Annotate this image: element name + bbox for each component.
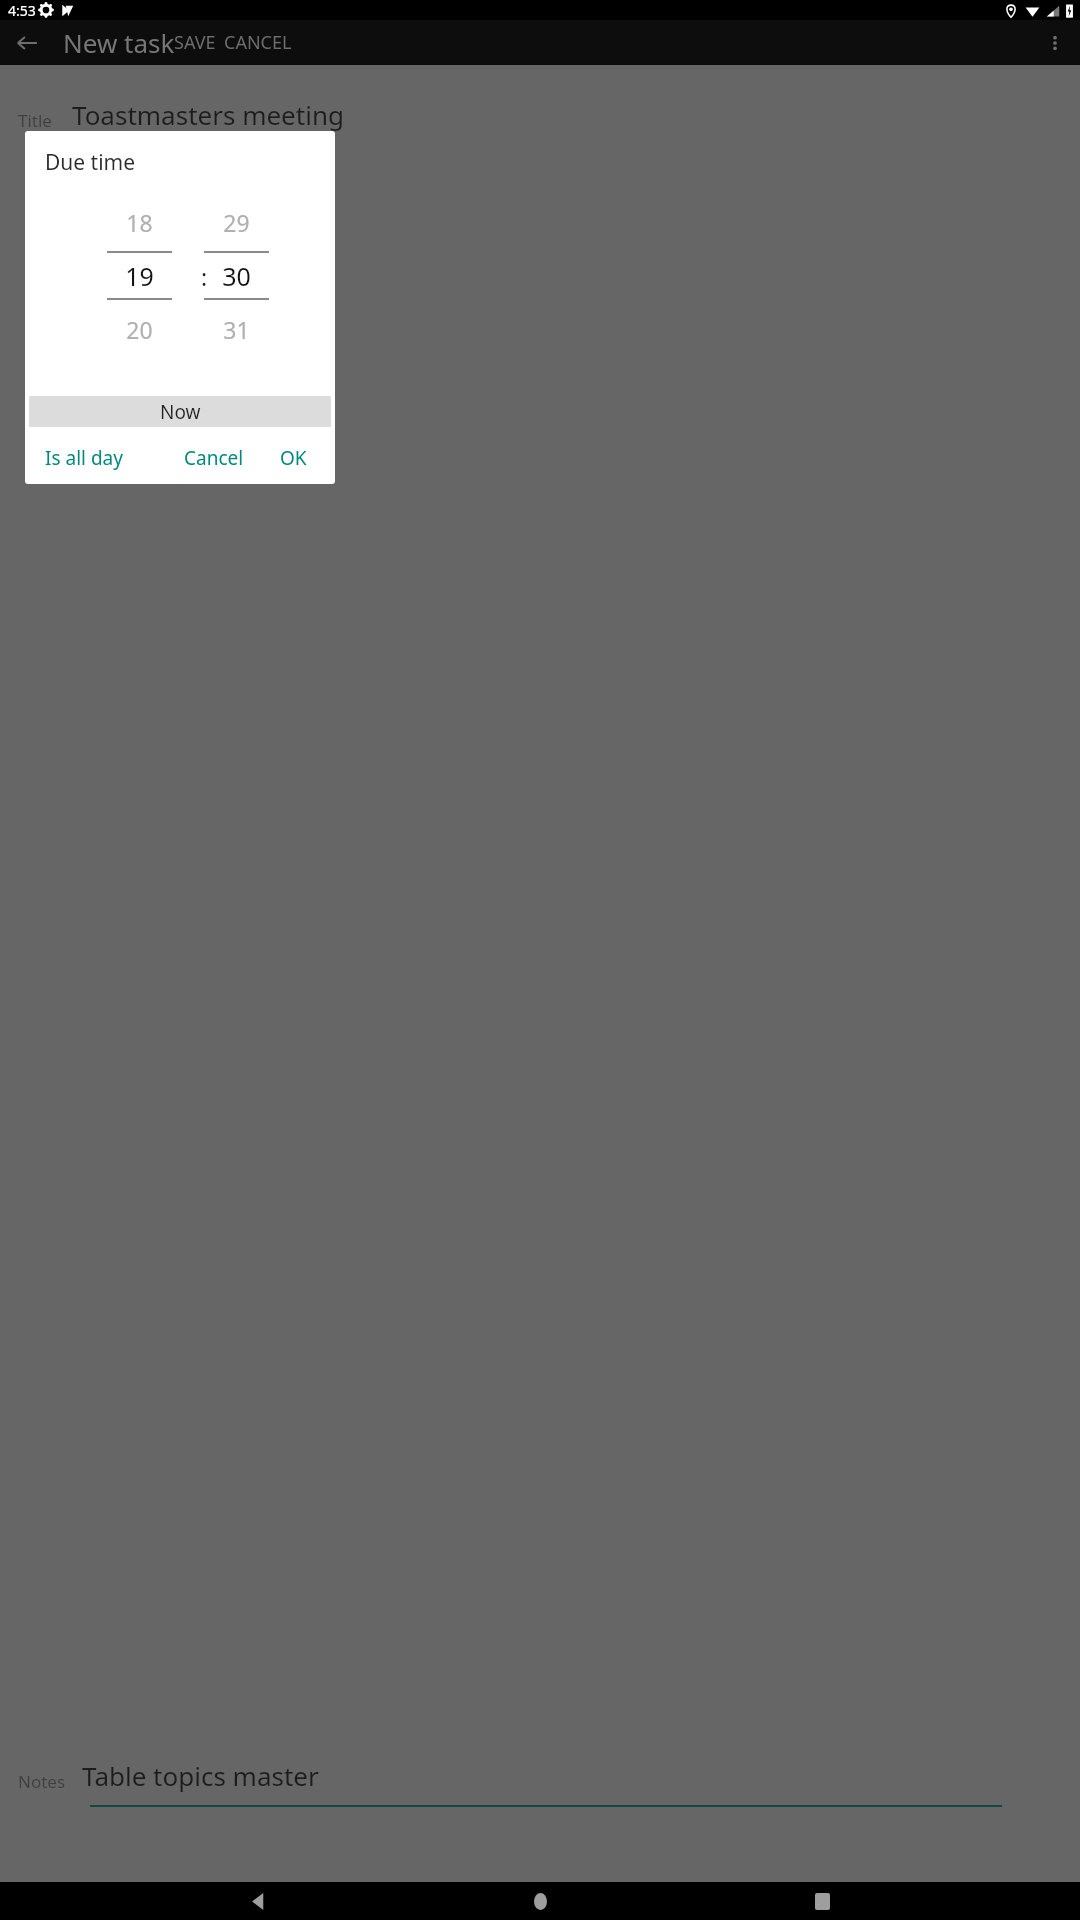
staticText: Table topics master [82, 1758, 319, 1793]
button[interactable]: Back [234, 1882, 282, 1920]
button[interactable]: Back [14, 30, 40, 56]
staticText: 30 [222, 259, 251, 293]
staticText: Toastmasters meeting [72, 97, 344, 132]
staticText: 31 [223, 314, 250, 345]
staticText: 29 [223, 207, 250, 238]
staticText: Notes [18, 1770, 66, 1793]
staticText: 19 [125, 259, 154, 293]
button[interactable]: Minute picker [204, 201, 269, 351]
button[interactable]: CANCEL [220, 26, 296, 59]
button[interactable]: Hour picker [107, 201, 172, 351]
button[interactable]: More options [1044, 32, 1066, 54]
staticText: Is all day [45, 445, 123, 471]
button[interactable]: OK [270, 439, 317, 477]
button[interactable]: Recent apps [798, 1882, 846, 1920]
staticText: OK [280, 445, 307, 471]
button[interactable]: Cancel [174, 439, 254, 477]
staticText: New task [63, 25, 175, 60]
button[interactable]: Now [29, 396, 331, 427]
button[interactable]: Home [516, 1882, 564, 1920]
staticText: Now [160, 399, 201, 425]
button[interactable]: Is all day [37, 439, 131, 477]
staticText: 4:53 [8, 1, 36, 20]
staticText: : [201, 261, 208, 292]
staticText: Due time [45, 148, 136, 177]
staticText: 20 [126, 314, 153, 345]
staticText: Cancel [184, 445, 244, 471]
button[interactable]: SAVE [170, 26, 220, 59]
staticText: Title [18, 109, 52, 132]
staticText: 18 [126, 207, 153, 238]
